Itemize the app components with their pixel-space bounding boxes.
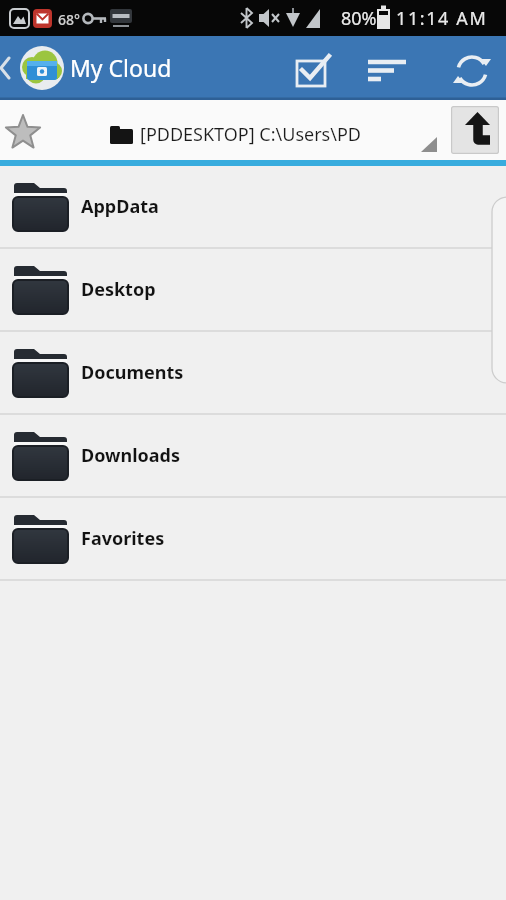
button[interactable]: Favorites	[0, 498, 506, 581]
button[interactable]: [PDDESKTOP] C:\Users\PD	[100, 106, 440, 156]
button[interactable]: AppData	[0, 166, 506, 249]
staticText: Documents	[81, 360, 184, 385]
staticText: AppData	[81, 194, 159, 219]
button[interactable]	[366, 54, 406, 94]
button[interactable]	[293, 54, 333, 94]
button[interactable]: Documents	[0, 332, 506, 415]
staticText: Desktop	[81, 277, 156, 302]
button[interactable]	[0, 100, 46, 146]
button[interactable]: Desktop	[0, 249, 506, 332]
button[interactable]	[452, 54, 492, 94]
staticText: [PDDESKTOP] C:\Users\PD	[140, 122, 361, 147]
button[interactable]	[451, 106, 499, 154]
staticText: Favorites	[81, 526, 165, 551]
staticText: My Cloud	[70, 52, 172, 83]
staticText: Downloads	[81, 443, 180, 468]
staticText: 80%	[341, 6, 377, 31]
staticText: 11:14 AM	[396, 6, 488, 31]
staticText: 68°	[58, 10, 80, 29]
button[interactable]: Downloads	[0, 415, 506, 498]
